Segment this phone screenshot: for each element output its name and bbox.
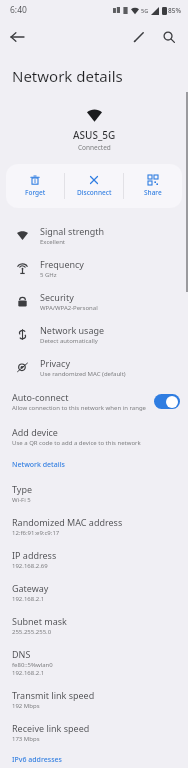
staticText: 192.168.2.1: [12, 595, 45, 603]
staticText: Transmit link speed: [12, 689, 95, 701]
staticText: Excellent: [40, 238, 66, 246]
staticText: Network details: [12, 460, 65, 470]
staticText: Wi-Fi 5: [12, 496, 31, 504]
staticText: Network details: [12, 66, 123, 86]
staticText: Detect automatically: [40, 337, 98, 345]
button[interactable]: Transmit link speed: [0, 683, 188, 716]
staticText: Gateway: [12, 582, 49, 594]
staticText: Subnet mask: [12, 615, 67, 627]
staticText: DNS: [12, 648, 31, 660]
staticText: ASUS_5G: [73, 128, 116, 142]
staticText: Use a QR code to add a device to this ne…: [12, 439, 141, 447]
button[interactable]: Add device: [0, 419, 188, 454]
staticText: Add device: [12, 426, 58, 438]
button[interactable]: Auto-connect toggle: [154, 394, 180, 409]
staticText: 5 GHz: [40, 271, 57, 279]
button[interactable]: Share: [124, 173, 182, 199]
staticText: Receive link speed: [12, 722, 90, 734]
staticText: IP address: [12, 549, 57, 561]
staticText: Use randomized MAC (default): [40, 370, 126, 378]
staticText: 85%: [168, 6, 181, 15]
staticText: Randomized MAC address: [12, 516, 123, 528]
staticText: IPv6 addresses: [12, 755, 63, 765]
staticText: 192.168.2.69: [12, 562, 48, 570]
staticText: Signal strength: [40, 225, 105, 237]
button[interactable]: Forget: [6, 173, 64, 199]
button[interactable]: IP address: [0, 543, 188, 576]
button[interactable]: Security: [0, 285, 188, 318]
staticText: Network usage: [40, 324, 105, 336]
button[interactable]: Back: [4, 24, 30, 50]
staticText: Disconnect: [77, 188, 112, 197]
staticText: 192.168.2.1: [12, 669, 45, 677]
staticText: Forget: [25, 188, 46, 197]
staticText: 192 Mbps: [12, 702, 40, 710]
staticText: Auto-connect: [12, 391, 69, 403]
staticText: WPA/WPA2-Personal: [40, 304, 98, 312]
button[interactable]: Disconnect: [65, 173, 123, 199]
staticText: Security: [40, 291, 74, 303]
button[interactable]: Auto-connect: [0, 384, 188, 419]
button[interactable]: Subnet mask: [0, 609, 188, 642]
button[interactable]: Search: [156, 24, 182, 50]
staticText: 173 Mbps: [12, 735, 40, 743]
staticText: Privacy: [40, 357, 71, 369]
staticText: Connected: [78, 143, 111, 152]
staticText: fe80::5%wlan0: [12, 661, 53, 669]
staticText: 12:f6:91:e9:c9:17: [12, 529, 60, 537]
staticText: Share: [144, 188, 162, 197]
button[interactable]: Edit: [126, 24, 152, 50]
staticText: 5G: [141, 7, 149, 14]
button[interactable]: Randomized MAC address: [0, 510, 188, 543]
button[interactable]: Privacy: [0, 351, 188, 384]
staticText: Allow connection to this network when in…: [12, 404, 146, 412]
button[interactable]: Signal strength: [0, 219, 188, 252]
staticText: 255.255.255.0: [12, 628, 52, 636]
button[interactable]: Receive link speed: [0, 716, 188, 749]
button[interactable]: Frequency: [0, 252, 188, 285]
button[interactable]: Network usage: [0, 318, 188, 351]
button[interactable]: Gateway: [0, 576, 188, 609]
staticText: Frequency: [40, 258, 84, 270]
button[interactable]: DNS: [0, 642, 188, 683]
button[interactable]: Type: [0, 477, 188, 510]
staticText: Type: [12, 483, 33, 495]
staticText: 6:40: [10, 4, 27, 16]
